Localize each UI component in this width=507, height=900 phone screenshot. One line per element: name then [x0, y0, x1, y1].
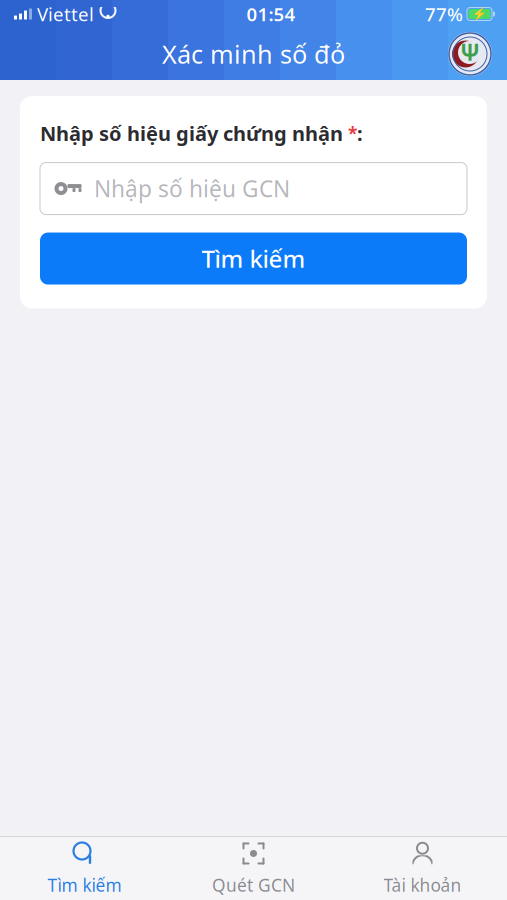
staticText: Ψ [460, 37, 480, 67]
button[interactable]: Tài khoản [338, 837, 507, 900]
staticText: 01:54 [246, 2, 295, 26]
staticText: Quét GCN [212, 873, 295, 896]
staticText: ⚡ [472, 7, 487, 21]
staticText: * [343, 122, 357, 145]
button[interactable]: Logo [447, 31, 493, 77]
button[interactable]: Nhập số hiệu GCN [40, 163, 467, 215]
staticText: Viettel [37, 2, 94, 26]
staticText: Nhập số hiệu GCN [94, 173, 290, 204]
staticText: Xác minh số đỏ [162, 37, 345, 71]
staticText: Tìm kiếm [47, 873, 121, 896]
button[interactable]: Tìm kiếm [40, 233, 467, 285]
button[interactable]: Tìm kiếm [0, 837, 169, 900]
staticText: Tìm kiếm [201, 243, 305, 274]
button[interactable]: Quét GCN [169, 837, 338, 900]
staticText: : [357, 120, 363, 147]
staticText: 77% [425, 2, 463, 26]
staticText: Tài khoản [383, 873, 461, 896]
staticText: Nhập số hiệu giấy chứng nhận [40, 120, 343, 147]
